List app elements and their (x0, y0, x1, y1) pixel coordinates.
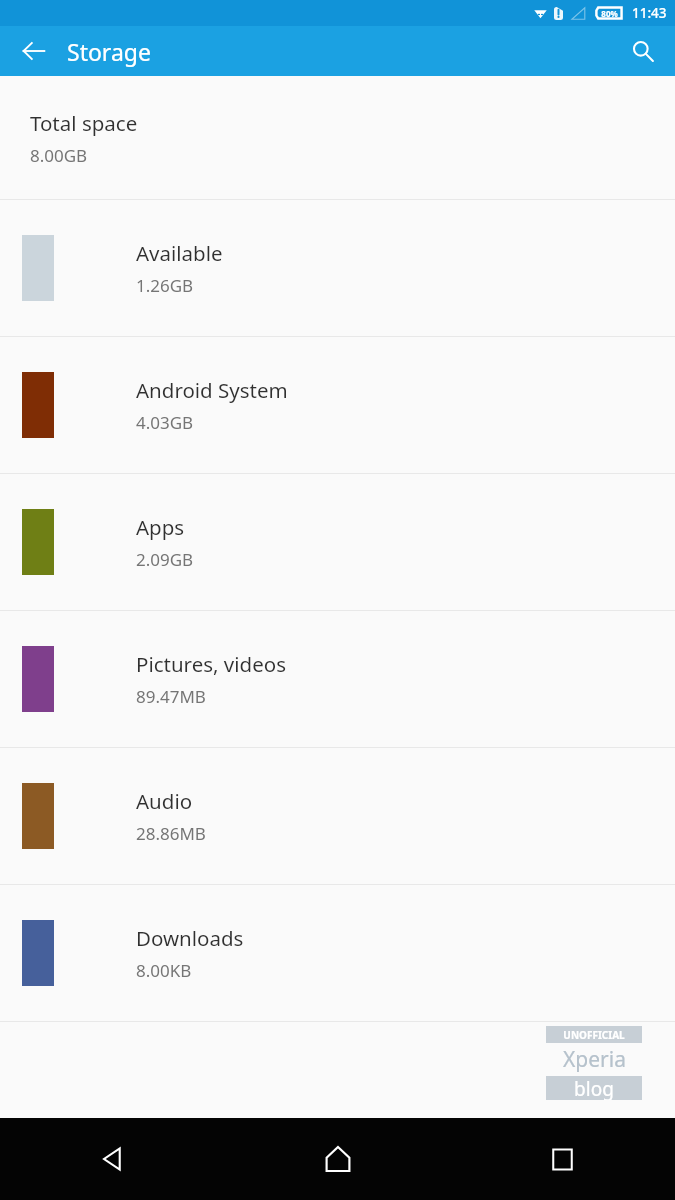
staticText: Apps (136, 513, 185, 541)
button[interactable]: Pictures, videos (0, 611, 675, 747)
staticText: Storage (67, 36, 151, 67)
staticText: Total space (30, 109, 138, 137)
staticText: Audio (136, 787, 193, 815)
staticText: 4.03GB (136, 411, 194, 434)
staticText: 2.09GB (136, 548, 194, 571)
staticText: Pictures, videos (136, 650, 286, 678)
button[interactable]: Total space (0, 76, 675, 199)
staticText: Downloads (136, 924, 244, 952)
button[interactable]: Back (0, 1118, 225, 1200)
staticText: Xperia (563, 1045, 626, 1074)
button[interactable]: Search (619, 27, 667, 75)
button[interactable]: Apps (0, 474, 675, 610)
staticText: 8.00KB (136, 959, 192, 982)
staticText: 80% (601, 8, 618, 19)
button[interactable]: Available (0, 200, 675, 336)
staticText: Android System (136, 376, 288, 404)
staticText: blog (574, 1076, 614, 1100)
staticText: 8.00GB (30, 144, 88, 167)
button[interactable]: Recents (450, 1118, 675, 1200)
staticText: 28.86MB (136, 822, 206, 845)
button[interactable]: Downloads (0, 885, 675, 1021)
staticText: 1.26GB (136, 274, 194, 297)
staticText: Available (136, 239, 223, 267)
button[interactable]: Home (225, 1118, 450, 1200)
staticText: UNOFFICIAL (563, 1028, 625, 1042)
button[interactable]: Back (10, 27, 58, 75)
staticText: 89.47MB (136, 685, 206, 708)
button[interactable]: Android System (0, 337, 675, 473)
button[interactable]: Audio (0, 748, 675, 884)
staticText: 11:43 (632, 4, 667, 22)
